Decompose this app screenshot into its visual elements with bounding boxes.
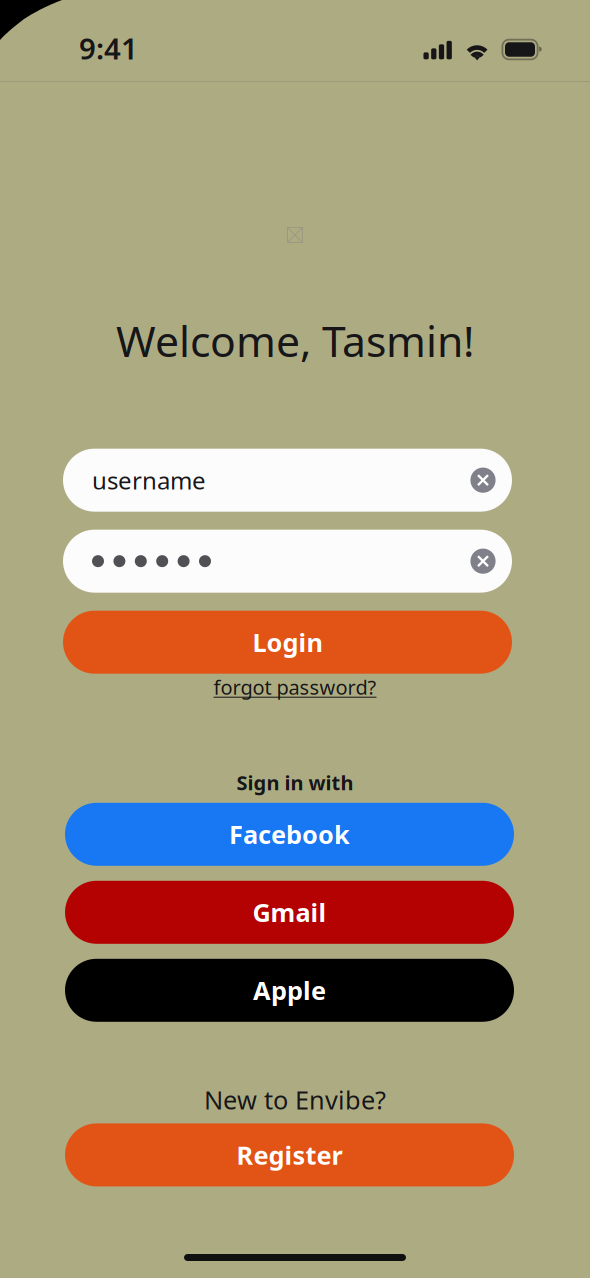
- staticText: 9:41: [79, 28, 138, 67]
- staticText: forgot password?: [213, 674, 376, 700]
- button[interactable]: Facebook: [65, 803, 514, 866]
- staticText: Apple: [253, 973, 326, 1007]
- button[interactable]: Register: [65, 1123, 514, 1186]
- button[interactable]: Clear text: [461, 456, 505, 504]
- button[interactable]: forgot password?: [213, 674, 376, 700]
- staticText: Sign in with: [236, 769, 353, 796]
- staticText: Login: [252, 625, 322, 659]
- staticText: username: [92, 464, 206, 496]
- staticText: New to Envibe?: [204, 1083, 386, 1116]
- staticText: Register: [236, 1138, 342, 1172]
- staticText: Gmail: [252, 895, 326, 929]
- staticText: Facebook: [229, 817, 350, 851]
- button[interactable]: Apple: [65, 959, 514, 1022]
- staticText: Welcome, Tasmin!: [116, 312, 474, 369]
- button[interactable]: Gmail: [65, 881, 514, 944]
- button[interactable]: Login: [63, 611, 512, 674]
- button[interactable]: Clear text: [461, 537, 505, 585]
- image: [287, 227, 303, 243]
